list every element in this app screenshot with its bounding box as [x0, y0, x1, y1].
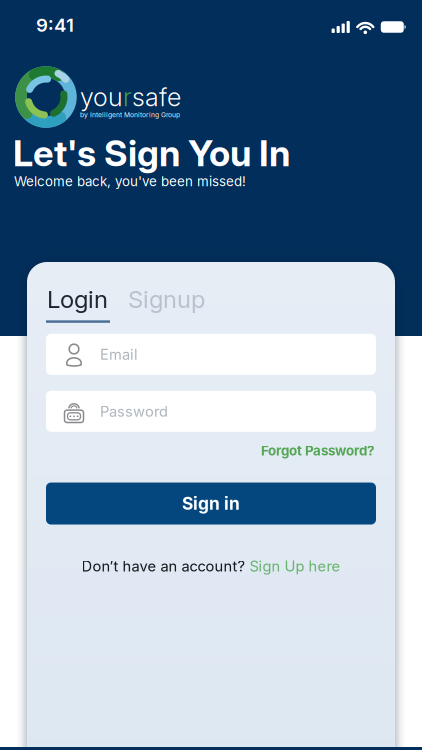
- staticText: Sign Up here: [249, 557, 340, 575]
- staticText: Login: [47, 285, 108, 313]
- staticText: by Intelligent Monitoring Group: [80, 111, 180, 119]
- button[interactable]: Sign Up here: [249, 557, 340, 575]
- button[interactable]: Sign in: [46, 482, 376, 524]
- staticText: Welcome back, you've been missed!: [14, 173, 246, 189]
- button[interactable]: Forgot Password?: [261, 443, 374, 458]
- staticText: 9:41: [36, 14, 74, 36]
- staticText: you: [80, 82, 123, 112]
- staticText: Sign in: [182, 493, 240, 514]
- button[interactable]: Password: [46, 391, 376, 432]
- staticText: Don’t have an account?: [81, 557, 244, 575]
- staticText: safe: [132, 82, 181, 112]
- staticText: Let's Sign You In: [13, 132, 290, 174]
- staticText: Forgot Password?: [261, 443, 374, 458]
- staticText: Email: [100, 346, 138, 363]
- staticText: r: [123, 82, 132, 112]
- button[interactable]: Signup: [128, 285, 205, 313]
- button[interactable]: Email: [46, 334, 376, 375]
- staticText: Password: [100, 403, 168, 420]
- staticText: Signup: [128, 285, 205, 313]
- button[interactable]: Login: [47, 285, 108, 313]
